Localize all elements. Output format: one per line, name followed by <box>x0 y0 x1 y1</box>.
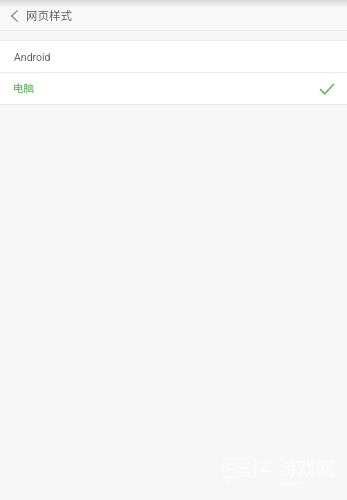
button[interactable]: Back <box>0 0 28 31</box>
staticText: 电脑 <box>13 80 34 95</box>
staticText: 网页样式 <box>26 7 72 24</box>
staticText: Android <box>14 51 51 63</box>
button[interactable]: 电脑 <box>0 73 347 104</box>
button[interactable]: Android <box>0 41 347 72</box>
